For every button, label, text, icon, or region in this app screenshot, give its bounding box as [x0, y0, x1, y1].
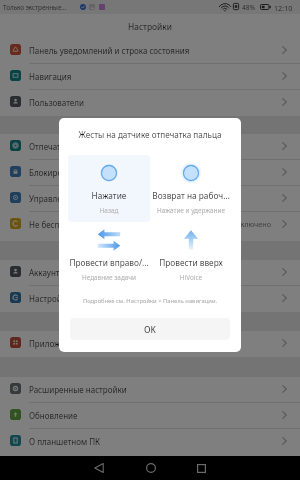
staticText: Только экстренные... [3, 3, 67, 12]
staticText: Провести вверх [150, 257, 232, 268]
staticText: Нажатие и удержание [150, 206, 232, 215]
button[interactable]: О планшетном ПК [0, 429, 300, 455]
staticText: Нажатие [68, 190, 150, 201]
button[interactable]: Нажатие [68, 155, 150, 222]
staticText: Не беспокоить [29, 219, 244, 230]
staticText: Навигация [29, 71, 244, 82]
button[interactable]: Настройки Google [0, 286, 300, 312]
button[interactable]: OK [70, 318, 230, 340]
button[interactable]: Блокировка экрана и пароли [0, 160, 300, 186]
button[interactable]: Навигация [0, 64, 300, 90]
staticText: Возврат на рабочий... [150, 190, 232, 201]
staticText: HiVoice [150, 273, 232, 282]
button[interactable]: Приложения [0, 331, 300, 357]
staticText: Недавние задачи [68, 273, 150, 282]
staticText: Обновление [29, 410, 244, 421]
button[interactable]: Провести вверх [150, 222, 232, 289]
button[interactable]: Управление правами [0, 186, 300, 212]
staticText: 48% [242, 3, 256, 12]
button[interactable]: Возврат на рабочий... [150, 155, 232, 222]
button[interactable]: Не беспокоить [0, 212, 300, 238]
button[interactable]: Back [81, 456, 117, 480]
button[interactable]: Пользователи [0, 90, 300, 116]
staticText: Подробнее см. Настройки > Панель навигац… [59, 297, 241, 305]
button[interactable]: Recents [183, 456, 219, 480]
staticText: Приложения [29, 338, 244, 349]
staticText: О планшетном ПК [29, 436, 244, 447]
staticText: Аккаунты [29, 267, 244, 278]
staticText: Настройки Google [29, 293, 244, 304]
staticText: Блокировка экрана и пароли [29, 167, 244, 178]
staticText: Отпечаток пальца [29, 141, 244, 152]
staticText: Расширенные настройки [29, 384, 244, 395]
button[interactable]: Панель уведомлений и строка состояния [0, 38, 300, 64]
staticText: Выключено [200, 219, 271, 229]
staticText: Управление правами [29, 193, 244, 204]
staticText: 12:10 [274, 3, 293, 13]
button[interactable]: Отпечаток пальца [0, 134, 300, 160]
staticText: Панель уведомлений и строка состояния [29, 45, 244, 56]
button[interactable]: Расширенные настройки [0, 377, 300, 403]
staticText: Провести вправо/вл... [68, 257, 150, 268]
staticText: Назад [68, 206, 150, 215]
staticText: Жесты на датчике отпечатка пальца [59, 129, 241, 140]
button[interactable]: Аккаунты [0, 260, 300, 286]
staticText: Пользователи [29, 97, 244, 108]
button[interactable]: Провести вправо/вл... [68, 222, 150, 289]
button[interactable]: Обновление [0, 403, 300, 429]
button[interactable]: Home [133, 456, 169, 480]
staticText: OK [144, 324, 156, 335]
staticText: Настройки [128, 21, 172, 32]
